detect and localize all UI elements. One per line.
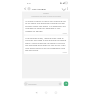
button[interactable]: Call bbox=[62, 7, 66, 11]
staticText: TODAY bbox=[43, 12, 49, 15]
staticText: Hi there! Thanks so much for reaching ou… bbox=[25, 19, 67, 32]
button[interactable]: Home bbox=[44, 91, 48, 94]
staticText: 10:24 bbox=[62, 51, 67, 54]
staticText: That sounds great, I would really love t… bbox=[25, 36, 67, 52]
button[interactable]: Recent apps bbox=[54, 91, 57, 94]
staticText: Message bbox=[28, 82, 36, 85]
button[interactable]: More options bbox=[66, 7, 69, 10]
staticText: Alex Morgan bbox=[32, 7, 46, 10]
staticText: 9:41 bbox=[27, 1, 31, 4]
staticText: 10:24 bbox=[62, 32, 67, 34]
button[interactable]: Message bbox=[23, 81, 62, 86]
button[interactable]: Back bbox=[23, 7, 27, 11]
button[interactable]: Back bbox=[34, 91, 38, 94]
button[interactable]: Send voice message bbox=[63, 81, 68, 86]
staticText: Messages are end-to-end encrypted bbox=[31, 15, 61, 18]
